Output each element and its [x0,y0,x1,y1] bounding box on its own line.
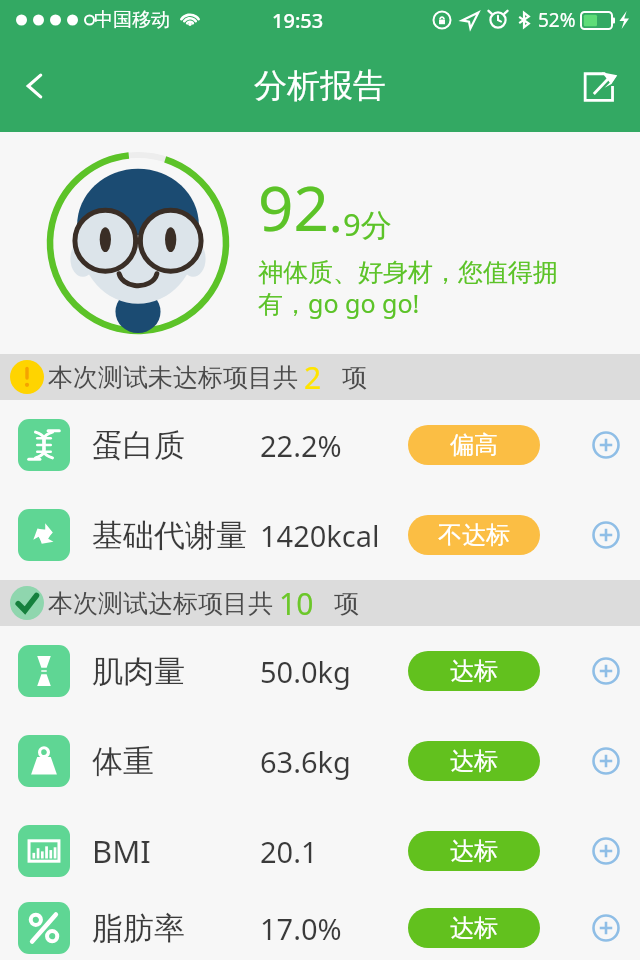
staticText: 项 [342,362,367,393]
staticText: 蛋白质 [92,426,260,465]
staticText: 项 [334,588,359,619]
staticText: 2 [304,357,322,398]
staticText: 9分 [343,203,392,245]
button[interactable]: Details for 蛋白质 [586,425,626,465]
staticText: 19:53 [272,7,324,34]
staticText: 中国移动 [94,8,170,32]
staticText: 17.0% [260,909,408,948]
staticText: 1420kcal [260,516,408,555]
staticText: 不达标 [438,520,510,550]
button[interactable]: Details for 脂肪率 [586,908,626,948]
button[interactable]: 肌肉量 [0,626,640,716]
staticText: 神体质、好身材，您值得拥 有，go go go! [258,257,558,321]
staticText: 92 [258,165,329,249]
button[interactable]: Share [562,47,640,125]
staticText: 50.0kg [260,652,408,691]
button[interactable]: 本次测试未达标项目共 [10,354,640,400]
staticText: 偏高 [450,430,498,460]
button[interactable]: 体重 [0,716,640,806]
staticText: 达标 [450,746,498,776]
staticText: 20.1 [260,832,408,871]
staticText: 分析报告 [254,65,386,107]
staticText: 本次测试未达标项目共 [48,362,298,393]
staticText: 脂肪率 [92,909,260,948]
staticText: . [329,179,343,247]
button[interactable]: Back [0,50,72,122]
staticText: 达标 [450,656,498,686]
staticText: 本次测试达标项目共 [48,588,273,619]
staticText: 体重 [92,742,260,781]
staticText: 10 [279,583,314,624]
button[interactable]: Details for BMI [586,831,626,871]
button[interactable]: 脂肪率 [0,896,640,960]
staticText: 基础代谢量 [92,516,260,555]
button[interactable]: BMI [0,806,640,896]
button[interactable]: 蛋白质 [0,400,640,490]
staticText: 63.6kg [260,742,408,781]
staticText: 达标 [450,836,498,866]
button[interactable]: 基础代谢量 [0,490,640,580]
button[interactable]: Details for 肌肉量 [586,651,626,691]
staticText: 达标 [450,913,498,943]
button[interactable]: 本次测试达标项目共 [10,580,640,626]
button[interactable]: Details for 基础代谢量 [586,515,626,555]
staticText: 22.2% [260,426,408,465]
button[interactable]: Details for 体重 [586,741,626,781]
staticText: BMI [92,830,260,872]
staticText: 52% [538,7,576,33]
staticText: 肌肉量 [92,652,260,691]
